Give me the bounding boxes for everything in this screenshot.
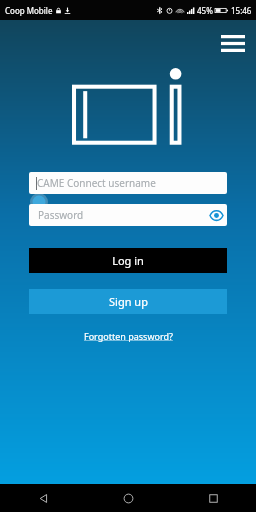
staticText: CAME Connect username — [37, 176, 156, 190]
button[interactable]: Password — [29, 204, 227, 226]
button[interactable]: Home — [86, 484, 171, 512]
staticText: Forgotten password? — [84, 330, 173, 342]
button[interactable]: Log in — [29, 248, 227, 273]
button[interactable]: Open navigation menu — [216, 26, 250, 60]
button[interactable]: Forgotten password? — [76, 328, 181, 344]
staticText: 45% — [197, 5, 213, 16]
staticText: Password — [38, 208, 84, 222]
staticText: 15:46 — [231, 5, 252, 16]
button[interactable]: Sign up — [29, 289, 227, 314]
button[interactable]: Back — [0, 484, 86, 512]
button[interactable]: Show password — [205, 204, 227, 226]
staticText: Sign up — [109, 294, 148, 309]
button[interactable]: Recent apps — [171, 484, 256, 512]
staticText: Log in — [112, 253, 144, 268]
button[interactable]: CAME Connect username — [29, 172, 227, 194]
staticText: Coop Mobile — [5, 5, 53, 16]
